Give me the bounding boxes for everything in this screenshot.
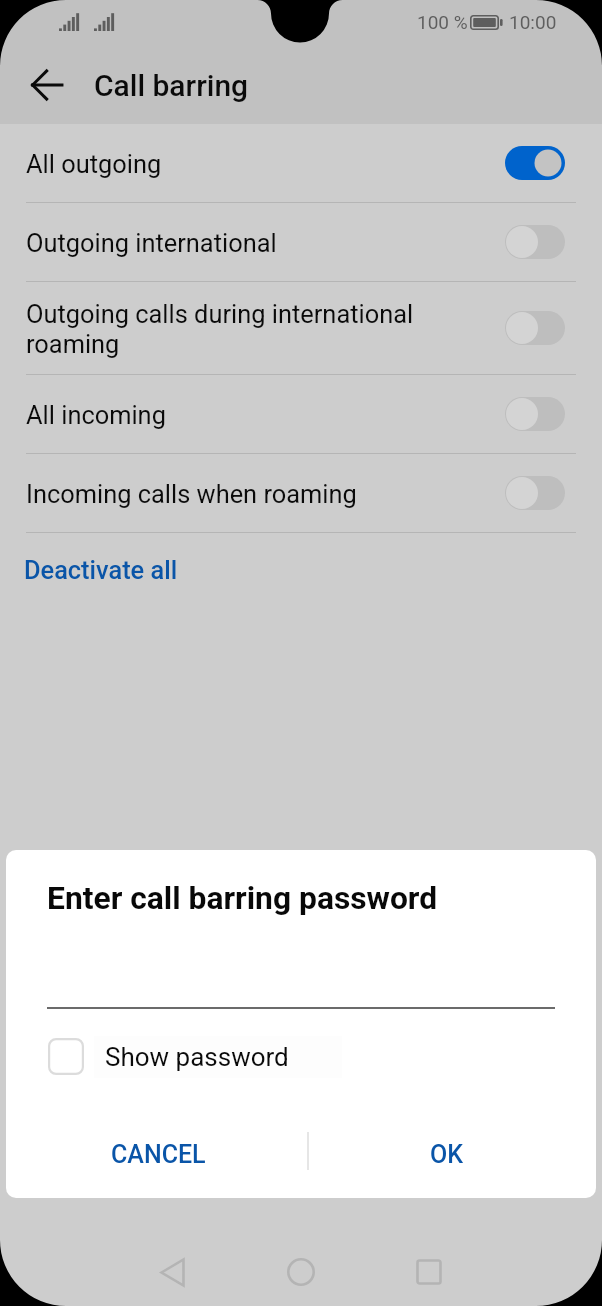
button[interactable]: All outgoing	[0, 124, 602, 203]
staticText: Call barring	[94, 68, 249, 103]
button[interactable]: Home	[259, 1238, 343, 1306]
staticText: 10:00	[509, 11, 557, 33]
button[interactable]: OK	[301, 1121, 596, 1187]
staticText: All outgoing	[26, 149, 455, 179]
button[interactable]: Incoming calls when roaming	[0, 454, 602, 533]
button[interactable]: All incoming	[0, 375, 602, 454]
button[interactable]: Back	[14, 53, 78, 117]
button[interactable]: Outgoing calls during international roam…	[0, 282, 602, 375]
staticText: Outgoing international	[26, 228, 455, 258]
button[interactable]: Show password	[48, 1038, 289, 1075]
staticText: All incoming	[26, 400, 455, 430]
staticText: 100 %	[417, 11, 468, 33]
staticText: Enter call barring password	[47, 879, 438, 916]
staticText: Incoming calls when roaming	[26, 479, 455, 509]
staticText: Outgoing calls during international roam…	[26, 299, 455, 359]
button[interactable]: CANCEL	[6, 1121, 301, 1187]
button[interactable]: Back	[130, 1238, 214, 1306]
button[interactable]: Recents	[387, 1238, 471, 1306]
button[interactable]: Outgoing international	[0, 203, 602, 282]
staticText: Show password	[105, 1042, 289, 1072]
staticText: OK	[430, 1140, 464, 1169]
staticText: CANCEL	[111, 1140, 206, 1169]
staticText: Deactivate all	[24, 555, 178, 585]
button[interactable]: Deactivate all	[0, 533, 602, 611]
